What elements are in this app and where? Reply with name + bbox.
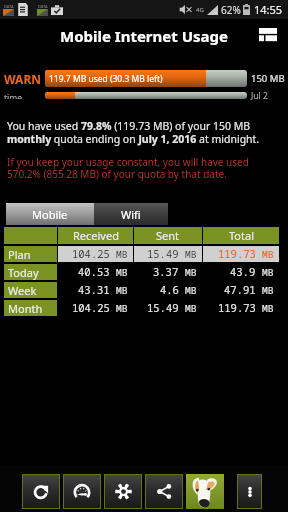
button[interactable]: Refresh bbox=[22, 474, 60, 509]
staticText: Wifi bbox=[121, 207, 141, 222]
staticText: 15.49 bbox=[147, 247, 179, 261]
staticText: 150 MB bbox=[251, 72, 285, 85]
staticText: DATA bbox=[4, 4, 14, 9]
button[interactable]: 3G Watchdog bbox=[186, 474, 224, 509]
staticText: 43.9 bbox=[230, 265, 256, 279]
staticText: Week bbox=[8, 283, 37, 298]
staticText: 119.73 bbox=[218, 301, 256, 315]
staticText: MB bbox=[262, 248, 274, 261]
staticText: MB bbox=[185, 248, 197, 261]
staticText: DATA bbox=[38, 4, 48, 9]
staticText: Total bbox=[229, 228, 254, 243]
staticText: 40.53 bbox=[78, 265, 110, 279]
staticText: 47.91 bbox=[224, 283, 256, 297]
staticText: MB bbox=[185, 266, 197, 279]
staticText: 15.49 bbox=[147, 301, 179, 315]
button[interactable]: Plan bbox=[4, 246, 282, 262]
staticText: Jul 2 bbox=[251, 90, 268, 102]
staticText: MB bbox=[116, 248, 128, 261]
staticText: MB bbox=[262, 266, 274, 279]
staticText: MB bbox=[116, 284, 128, 297]
button[interactable]: Share bbox=[145, 474, 183, 509]
button[interactable]: Dashboard layout bbox=[253, 20, 283, 50]
staticText: You have used 79.8% (119.73 MB) of your … bbox=[7, 119, 285, 146]
staticText: Sent bbox=[156, 228, 180, 243]
staticText: Plan bbox=[8, 247, 31, 262]
staticText: 43.31 bbox=[78, 283, 110, 297]
button[interactable]: More options bbox=[237, 474, 262, 509]
button[interactable]: Settings bbox=[104, 474, 142, 509]
staticText: time bbox=[4, 92, 23, 99]
staticText: WARN bbox=[4, 71, 42, 87]
staticText: 119.7 MB used (30.3 MB left) bbox=[49, 73, 163, 85]
staticText: 119.73 bbox=[218, 247, 256, 261]
staticText: If you keep your usage constant, you wil… bbox=[7, 155, 285, 181]
staticText: Today bbox=[8, 265, 39, 280]
staticText: MB bbox=[262, 302, 274, 315]
button[interactable]: Wifi bbox=[94, 203, 168, 225]
button[interactable]: Month bbox=[4, 300, 282, 316]
staticText: MB bbox=[262, 284, 274, 297]
staticText: Month bbox=[8, 301, 43, 316]
staticText: 3.37 bbox=[153, 265, 179, 279]
staticText: MB bbox=[116, 266, 128, 279]
staticText: MB bbox=[185, 302, 197, 315]
button[interactable]: Today bbox=[4, 264, 282, 280]
staticText: Mobile Internet Usage bbox=[60, 26, 228, 46]
staticText: 14:55 bbox=[254, 2, 283, 17]
staticText: Received bbox=[73, 228, 119, 243]
staticText: 4.6 bbox=[160, 283, 179, 297]
staticText: 4G bbox=[196, 6, 204, 14]
staticText: MB bbox=[116, 302, 128, 315]
staticText: MB bbox=[185, 284, 197, 297]
button[interactable]: Mobile bbox=[6, 203, 94, 225]
staticText: 104.25 bbox=[72, 301, 110, 315]
button[interactable]: Speed test bbox=[63, 474, 101, 509]
staticText: Mobile bbox=[32, 207, 68, 222]
staticText: 104.25 bbox=[72, 247, 110, 261]
staticText: 62% bbox=[221, 3, 241, 17]
button[interactable]: Week bbox=[4, 282, 282, 298]
